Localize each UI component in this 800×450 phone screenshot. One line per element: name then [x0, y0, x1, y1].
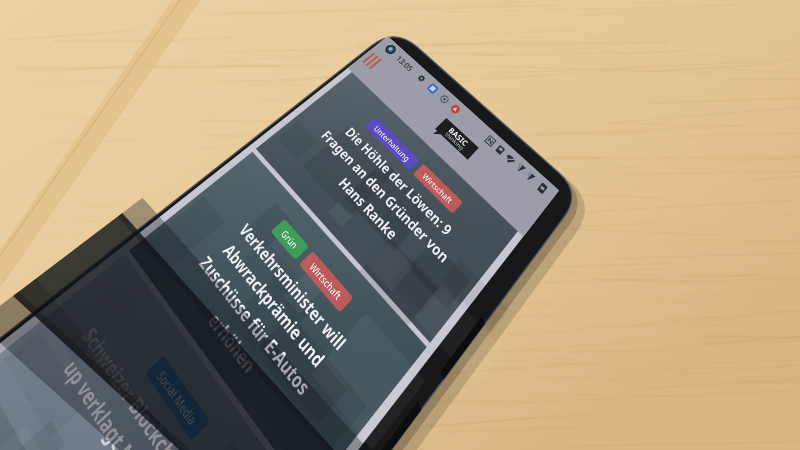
button[interactable]: BASIC thinking news app on a phone — [0, 0, 800, 450]
